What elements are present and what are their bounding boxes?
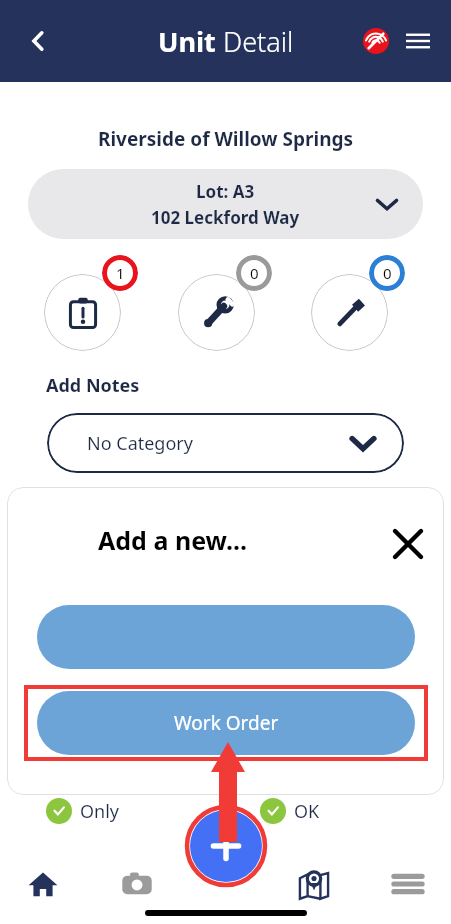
staticText: Detail bbox=[223, 23, 294, 60]
button[interactable]: Work Order bbox=[37, 691, 415, 755]
button[interactable]: Inspection bbox=[37, 605, 415, 669]
button[interactable]: No Category bbox=[47, 413, 404, 473]
staticText: Unit bbox=[158, 23, 223, 60]
button[interactable]: Menu bbox=[397, 20, 439, 62]
staticText: Add Notes bbox=[46, 373, 140, 398]
staticText: Riverside of Willow Springs bbox=[0, 126, 451, 152]
staticText: Add a new... bbox=[98, 523, 248, 557]
button[interactable]: Issues bbox=[44, 255, 140, 351]
button[interactable]: Offline bbox=[359, 24, 393, 58]
staticText: No Category bbox=[87, 431, 193, 456]
staticText: Work Order bbox=[174, 710, 279, 736]
staticText: Only bbox=[80, 799, 120, 824]
button[interactable]: Close bbox=[385, 521, 431, 567]
button[interactable]: Back bbox=[14, 17, 62, 65]
button[interactable]: Service bbox=[178, 255, 274, 351]
staticText: Lot: A3 bbox=[196, 180, 255, 203]
staticText: 1 bbox=[116, 263, 125, 283]
button[interactable]: Lot: A3 bbox=[28, 169, 423, 239]
staticText: 0 bbox=[250, 263, 259, 283]
staticText: 0 bbox=[383, 263, 392, 283]
button[interactable]: Home bbox=[0, 854, 86, 914]
button[interactable]: Add bbox=[184, 804, 268, 888]
button[interactable]: Map bbox=[271, 854, 357, 914]
button[interactable]: More bbox=[365, 854, 451, 914]
staticText: 102 Leckford Way bbox=[151, 206, 300, 229]
button[interactable]: Work bbox=[311, 255, 407, 351]
button[interactable]: Camera bbox=[94, 854, 180, 914]
staticText: OK bbox=[294, 799, 320, 824]
